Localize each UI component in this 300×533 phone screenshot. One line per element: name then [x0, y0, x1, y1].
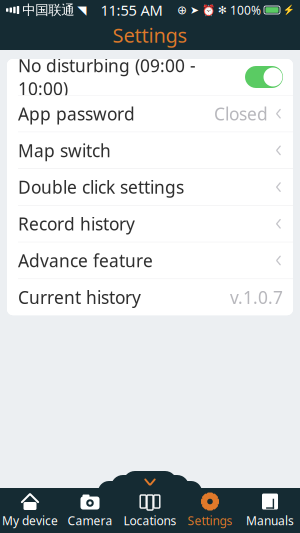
button[interactable]: No disturbing (09:00 - 10:00): [7, 59, 293, 95]
button[interactable]: Manuals: [240, 488, 300, 533]
staticText: Advance feature: [18, 249, 153, 272]
button[interactable]: Advance feature: [7, 242, 293, 278]
staticText: No disturbing (09:00 - 10:00): [18, 54, 196, 100]
staticText: ◥: [77, 3, 86, 17]
staticText: 11:55 AM: [101, 0, 163, 20]
staticText: ⏰: [202, 4, 215, 16]
staticText: Closed: [214, 102, 268, 125]
staticText: ⚡: [283, 5, 295, 15]
button[interactable]: Record history: [7, 206, 293, 242]
staticText: Camera: [67, 512, 112, 528]
button[interactable]: My device: [0, 488, 60, 533]
button[interactable]: Current history: [7, 279, 293, 315]
staticText: ✻: [218, 4, 227, 16]
staticText: Settings: [112, 22, 187, 48]
staticText: Manuals: [246, 512, 294, 528]
button[interactable]: Double click settings: [7, 169, 293, 205]
button[interactable]: Locations: [120, 488, 180, 533]
button[interactable]: Settings: [180, 488, 240, 533]
staticText: 100%: [230, 2, 261, 18]
staticText: Double click settings: [18, 176, 184, 199]
staticText: ➤: [190, 4, 199, 16]
button[interactable]: Camera: [60, 488, 120, 533]
staticText: Record history: [18, 212, 135, 235]
staticText: Locations: [123, 512, 176, 528]
staticText: Settings: [187, 512, 232, 528]
staticText: v.1.0.7: [230, 286, 283, 309]
button[interactable]: Map switch: [7, 132, 293, 168]
staticText: Current history: [18, 286, 141, 309]
staticText: App password: [18, 102, 135, 125]
staticText: 中国联通: [22, 2, 74, 18]
staticText: ⊕: [177, 3, 187, 17]
staticText: Map switch: [18, 139, 111, 162]
staticText: My device: [2, 512, 58, 528]
button[interactable]: App password: [7, 96, 293, 132]
